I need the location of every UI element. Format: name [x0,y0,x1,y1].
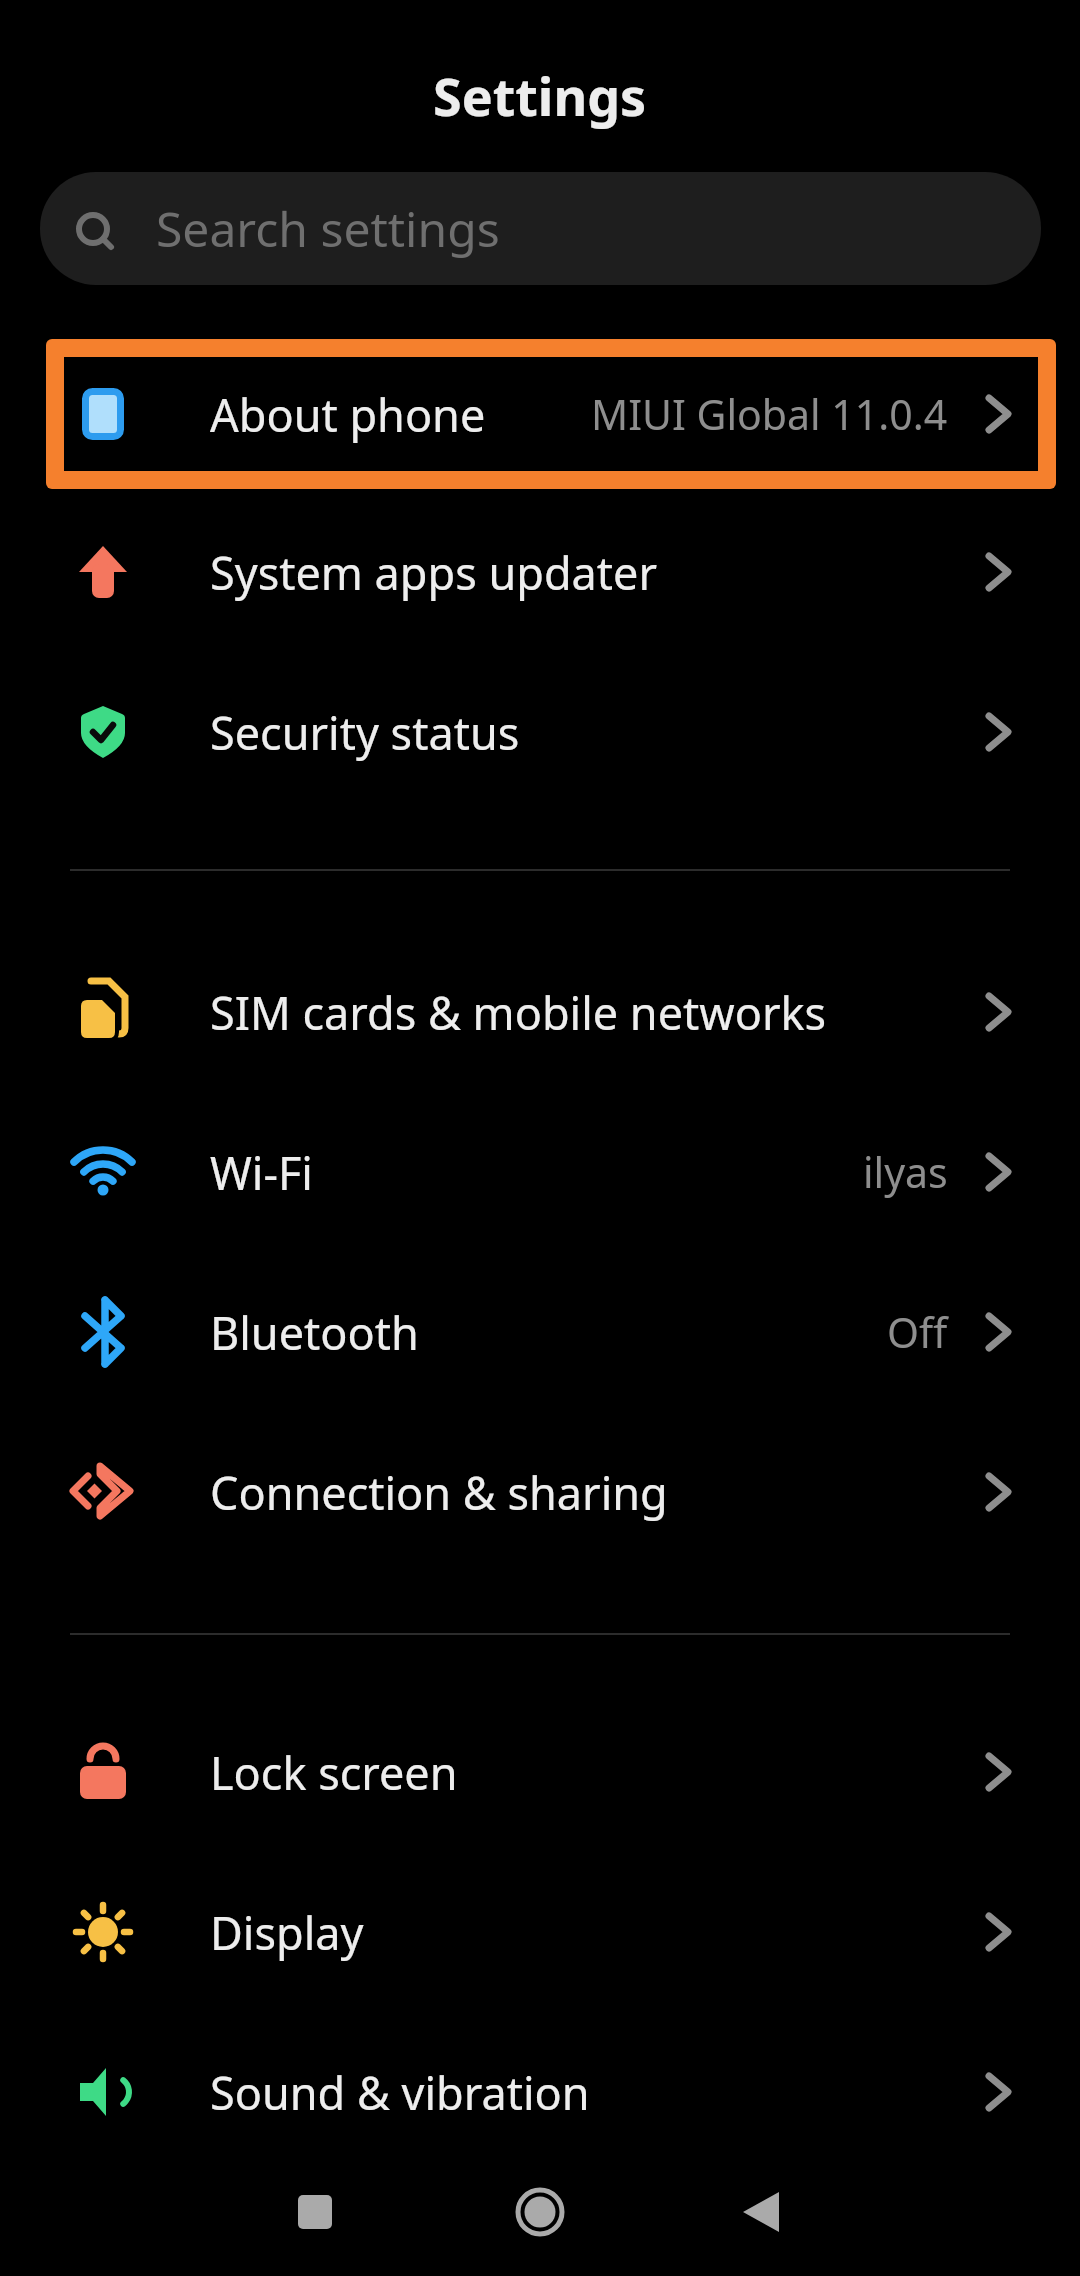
staticText: Bluetooth [210,1302,419,1363]
staticText: Settings [433,60,647,131]
staticText: Lock screen [210,1742,458,1803]
button[interactable]: About phone [0,334,1080,494]
staticText: Wi-Fi [210,1142,313,1203]
staticText: SIM cards & mobile networks [210,982,827,1043]
staticText: Off [887,1304,948,1360]
staticText: System apps updater [210,542,658,603]
button[interactable] [506,2178,574,2246]
button[interactable]: Display [0,1852,1080,2012]
staticText: Sound & vibration [210,2062,590,2123]
staticText: Search settings [156,196,500,261]
staticText: MIUI Global 11.0.4 [591,386,948,442]
staticText: About phone [210,384,486,445]
button[interactable]: Security status [0,652,1080,812]
button[interactable] [727,2178,795,2246]
button[interactable] [281,2178,349,2246]
button[interactable]: SIM cards & mobile networks [0,932,1080,1092]
staticText: Display [210,1902,364,1963]
button[interactable]: Lock screen [0,1692,1080,1852]
button[interactable]: Connection & sharing [0,1412,1080,1572]
button[interactable]: System apps updater [0,492,1080,652]
staticText: Security status [210,702,520,763]
button[interactable]: Sound & vibration [0,2012,1080,2172]
button[interactable]: Search settings [40,172,1041,285]
staticText: Connection & sharing [210,1462,668,1523]
staticText: ilyas [863,1144,948,1200]
button[interactable]: Bluetooth [0,1252,1080,1412]
button[interactable]: Wi-Fi [0,1092,1080,1252]
